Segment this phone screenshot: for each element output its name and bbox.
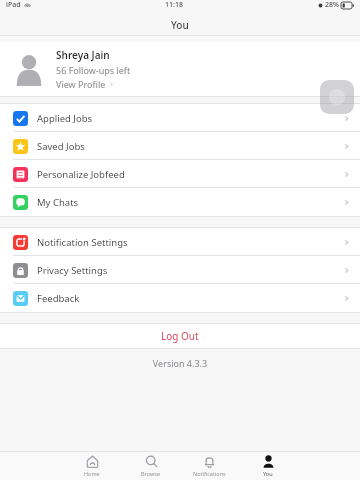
staticText: Feedback	[37, 292, 80, 305]
button[interactable]: Notification Settings	[0, 228, 360, 256]
button[interactable]: Applied Jobs	[0, 104, 360, 132]
button[interactable]: Home	[70, 455, 114, 477]
staticText: 56 Follow-ups left	[56, 64, 131, 76]
staticText: Applied Jobs	[37, 112, 93, 125]
staticText: 11:18	[165, 0, 183, 10]
staticText: Log Out	[161, 329, 199, 343]
staticText: Personalize Jobfeed	[37, 168, 125, 181]
staticText: You	[263, 470, 273, 477]
button[interactable]: Personalize Jobfeed	[0, 160, 360, 188]
staticText: My Chats	[37, 196, 79, 209]
button[interactable]: Shreya Jain	[0, 42, 360, 96]
staticText: Shreya Jain	[56, 48, 110, 62]
staticText: Home	[84, 470, 100, 477]
staticText: Version 4.3.3	[0, 357, 360, 369]
staticText: You	[171, 18, 189, 32]
staticText: Notifications	[193, 470, 226, 477]
staticText: 28%	[325, 0, 339, 10]
button[interactable]: Log Out	[0, 324, 360, 348]
button[interactable]: Saved Jobs	[0, 132, 360, 160]
staticText: View Profile	[56, 78, 106, 90]
staticText: Notification Settings	[37, 236, 128, 249]
button[interactable]: Feedback	[0, 284, 360, 312]
button[interactable]: Browse	[129, 455, 173, 477]
staticText: Browse	[141, 470, 161, 477]
button[interactable]: My Chats	[0, 188, 360, 216]
staticText: iPad	[6, 0, 21, 10]
staticText: Privacy Settings	[37, 264, 108, 277]
button[interactable]: Privacy Settings	[0, 256, 360, 284]
staticText: Saved Jobs	[37, 140, 85, 153]
button[interactable]: Notifications	[187, 455, 231, 477]
button[interactable]: Assistive Touch	[320, 80, 354, 114]
button[interactable]: You	[246, 455, 290, 477]
